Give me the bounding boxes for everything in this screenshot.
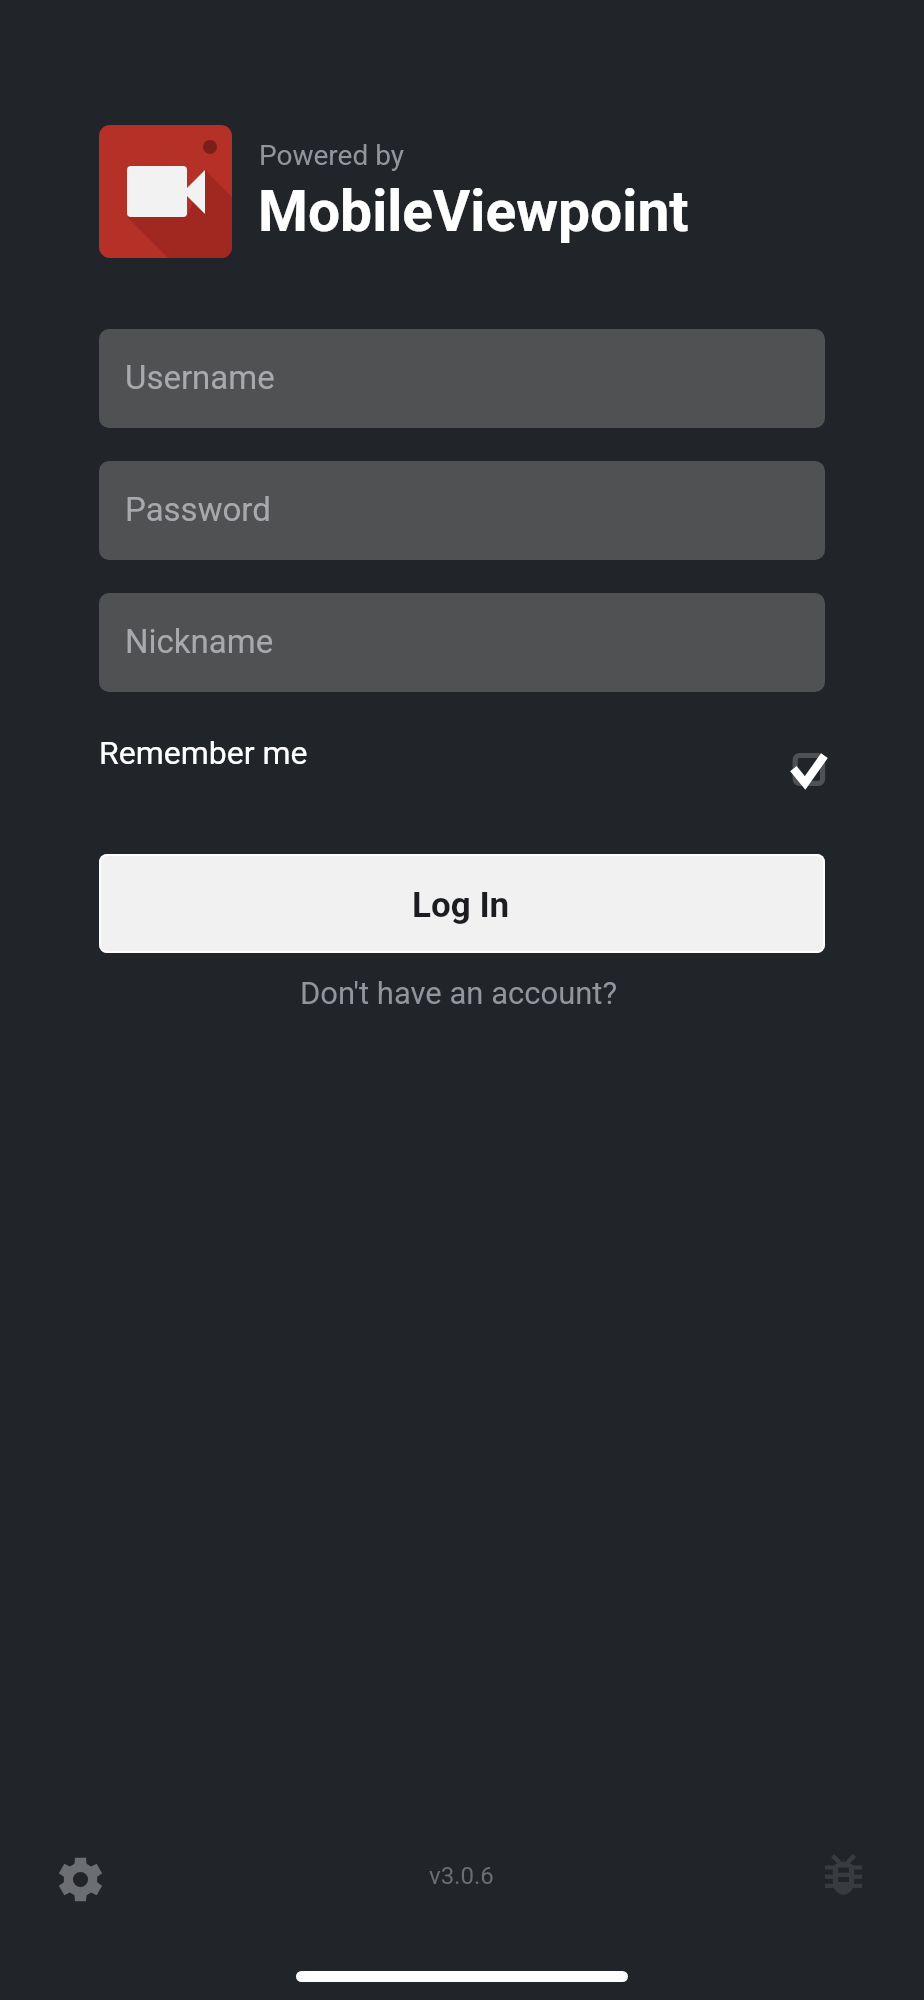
staticText: Log In xyxy=(412,885,510,926)
button[interactable]: Remember me xyxy=(99,710,825,792)
button[interactable]: Password xyxy=(99,461,825,560)
staticText: Password xyxy=(125,490,271,529)
button[interactable]: Nickname xyxy=(99,593,825,692)
staticText: Remember me xyxy=(99,734,308,772)
button[interactable]: Username xyxy=(99,329,825,428)
staticText: Nickname xyxy=(125,622,274,661)
staticText: v3.0.6 xyxy=(429,1862,494,1890)
button[interactable]: Settings xyxy=(49,1848,112,1911)
button[interactable]: Remember me xyxy=(788,747,832,791)
button[interactable]: Report a bug xyxy=(812,1848,875,1911)
button[interactable]: Don't have an account? xyxy=(291,973,633,1025)
button[interactable]: Log In xyxy=(99,854,825,953)
staticText: MobileViewpoint xyxy=(258,178,689,245)
staticText: Username xyxy=(125,358,275,397)
staticText: Powered by xyxy=(259,139,404,172)
